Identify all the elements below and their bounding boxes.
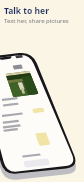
staticText: Text her, share pictures	[4, 17, 69, 25]
staticText: Talk to her	[4, 5, 49, 17]
